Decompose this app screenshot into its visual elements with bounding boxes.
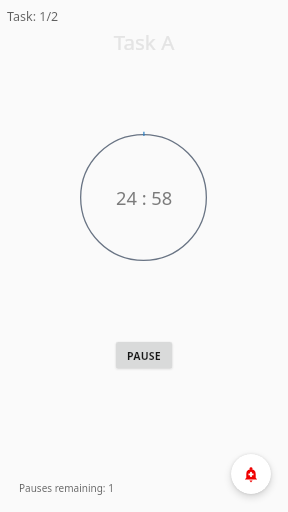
staticText: Task: 1/2 <box>7 8 59 25</box>
staticText: Pauses remaining: 1 <box>19 481 114 495</box>
staticText: PAUSE <box>127 349 161 363</box>
staticText: 24 : 58 <box>116 185 173 210</box>
staticText: Task A <box>0 28 288 56</box>
button[interactable]: Add alarm <box>231 454 271 494</box>
button[interactable]: PAUSE <box>116 342 172 368</box>
